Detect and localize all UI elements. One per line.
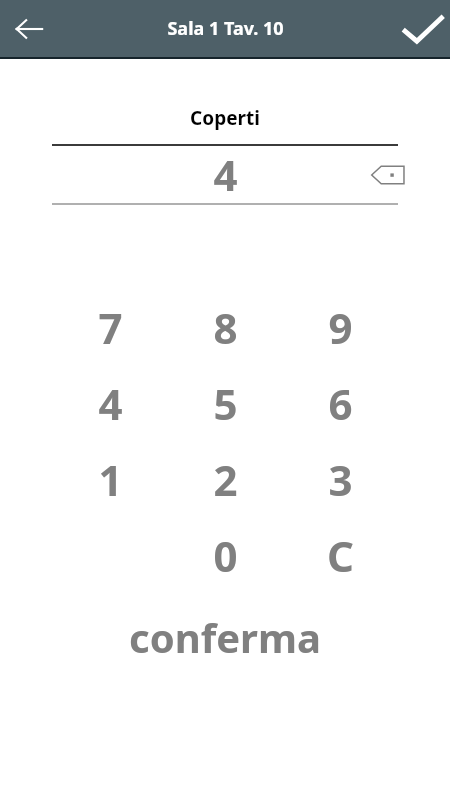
button[interactable]: 6 xyxy=(283,365,398,441)
staticText: 7 xyxy=(98,299,123,356)
staticText: 2 xyxy=(213,451,238,508)
button[interactable]: C xyxy=(283,517,398,593)
staticText: Coperti xyxy=(190,105,260,131)
button[interactable]: 9 xyxy=(283,289,398,365)
button[interactable]: conferma xyxy=(0,593,450,677)
button[interactable]: 5 xyxy=(168,365,283,441)
button[interactable]: Confirm xyxy=(399,5,447,53)
staticText: 8 xyxy=(213,299,238,356)
staticText: Sala 1 Tav. 10 xyxy=(167,16,284,41)
staticText: 4 xyxy=(213,146,238,203)
staticText: 6 xyxy=(328,375,353,432)
button[interactable]: 0 xyxy=(168,517,283,593)
staticText: conferma xyxy=(129,610,321,664)
button[interactable]: 8 xyxy=(168,289,283,365)
staticText: 3 xyxy=(328,451,353,508)
staticText: 0 xyxy=(213,527,238,584)
button[interactable]: 2 xyxy=(168,441,283,517)
staticText: 1 xyxy=(98,451,123,508)
button[interactable]: Backspace xyxy=(366,158,410,192)
button[interactable]: 3 xyxy=(283,441,398,517)
staticText: 9 xyxy=(328,299,353,356)
button[interactable]: 1 xyxy=(53,441,168,517)
button[interactable]: Back xyxy=(8,8,50,50)
button[interactable]: 7 xyxy=(53,289,168,365)
staticText: 5 xyxy=(213,375,238,432)
staticText: 4 xyxy=(98,375,123,432)
staticText: C xyxy=(327,527,354,584)
button[interactable]: 4 xyxy=(53,365,168,441)
